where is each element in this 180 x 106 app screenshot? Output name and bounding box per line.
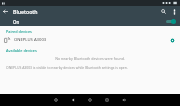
staticText: Bluetooth <box>13 8 38 15</box>
button[interactable]: Screenshot <box>51 94 61 106</box>
button[interactable]: Device settings <box>166 35 178 45</box>
button[interactable]: More options <box>169 6 180 17</box>
staticText: ONEPLUS A3003 <box>14 37 47 43</box>
button[interactable]: Recents <box>102 94 112 106</box>
staticText: Paired devices <box>6 29 32 34</box>
staticText: Available devices <box>6 48 37 53</box>
button[interactable]: Back <box>0 6 11 17</box>
staticText: ONEPLUS A3003 is visible to nearby devic… <box>6 65 128 70</box>
button[interactable]: Home <box>85 94 95 106</box>
staticText: No nearby Bluetooth devices were found. <box>0 56 180 61</box>
button[interactable]: ONEPLUS A3003 <box>0 35 180 45</box>
button[interactable]: Volume <box>119 94 129 106</box>
button[interactable]: Search <box>158 6 169 17</box>
button[interactable]: Back <box>68 94 78 106</box>
staticText: On <box>13 19 20 25</box>
button[interactable]: On <box>0 17 180 26</box>
